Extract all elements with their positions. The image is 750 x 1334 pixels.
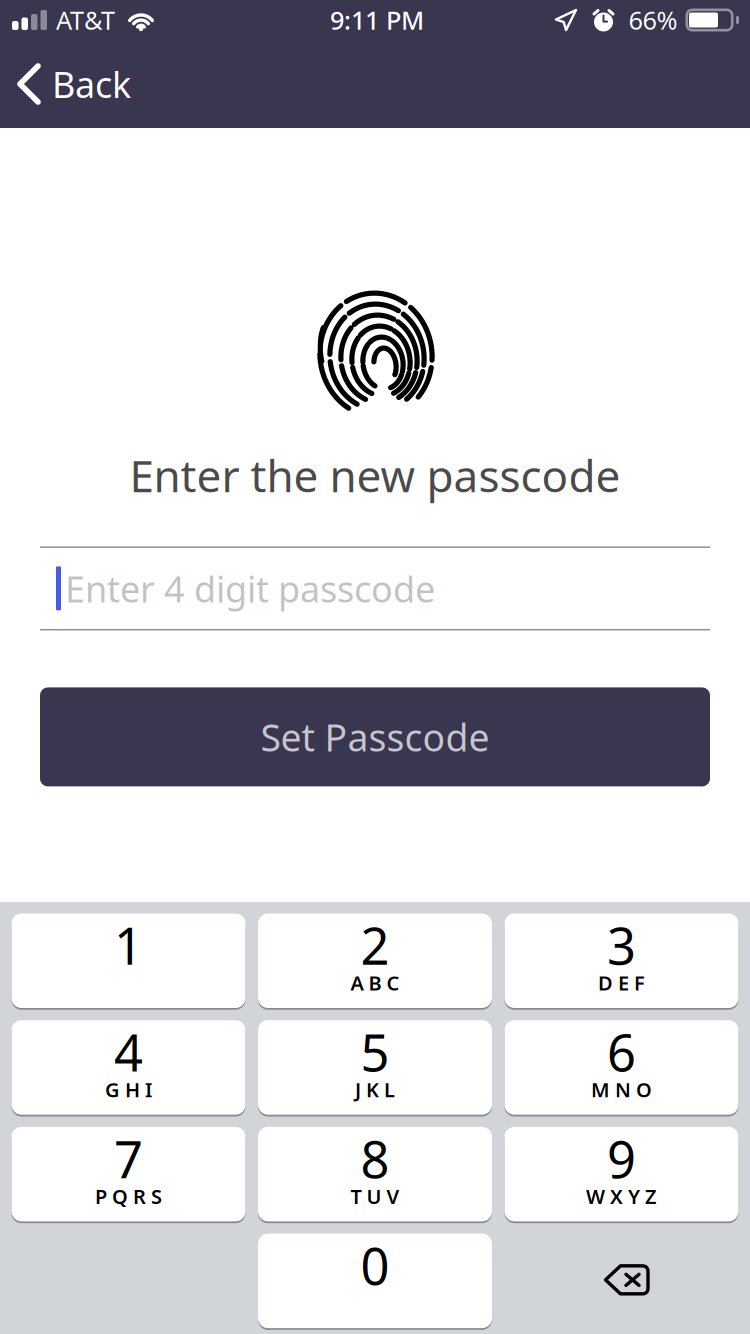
staticText: 66% (628, 3, 677, 37)
button[interactable]: 4 (11, 1019, 245, 1116)
button[interactable]: 0 (258, 1233, 492, 1329)
button[interactable]: 2 (258, 912, 492, 1009)
staticText: Back (52, 60, 131, 108)
button[interactable]: Delete (504, 1233, 738, 1329)
button[interactable]: Set Passcode (0, 687, 750, 786)
staticText: J K L (355, 1076, 395, 1103)
staticText: Enter 4 digit passcode (65, 564, 435, 612)
staticText: A B C (350, 969, 399, 996)
staticText: 3 (607, 911, 636, 979)
staticText: 0 (360, 1232, 389, 1299)
staticText: P Q R S (95, 1183, 162, 1209)
staticText: 7 (114, 1125, 143, 1192)
button[interactable]: 6 (504, 1019, 738, 1116)
button[interactable]: 5 (258, 1019, 492, 1116)
staticText: 4 (114, 1018, 143, 1085)
staticText: G H I (105, 1076, 152, 1103)
staticText: AT&T (56, 3, 115, 37)
staticText: 5 (360, 1018, 389, 1085)
staticText: 1 (114, 911, 143, 979)
button[interactable]: 7 (11, 1126, 245, 1222)
button[interactable]: Back (0, 55, 153, 113)
staticText: Enter the new passcode (129, 446, 620, 504)
staticText: 9 (607, 1125, 636, 1192)
staticText: 2 (360, 911, 389, 979)
staticText: D E F (598, 969, 645, 996)
button[interactable]: 1 (11, 912, 245, 1009)
staticText: 9:11 PM (330, 3, 424, 37)
staticText: W X Y Z (586, 1183, 657, 1209)
staticText: M N O (591, 1076, 652, 1103)
staticText: 8 (360, 1125, 389, 1192)
button[interactable]: 9 (504, 1126, 738, 1222)
staticText: T U V (350, 1183, 399, 1209)
staticText: Set Passcode (260, 712, 489, 762)
button[interactable]: 3 (504, 912, 738, 1009)
button[interactable]: 8 (258, 1126, 492, 1222)
staticText: 6 (607, 1018, 636, 1085)
